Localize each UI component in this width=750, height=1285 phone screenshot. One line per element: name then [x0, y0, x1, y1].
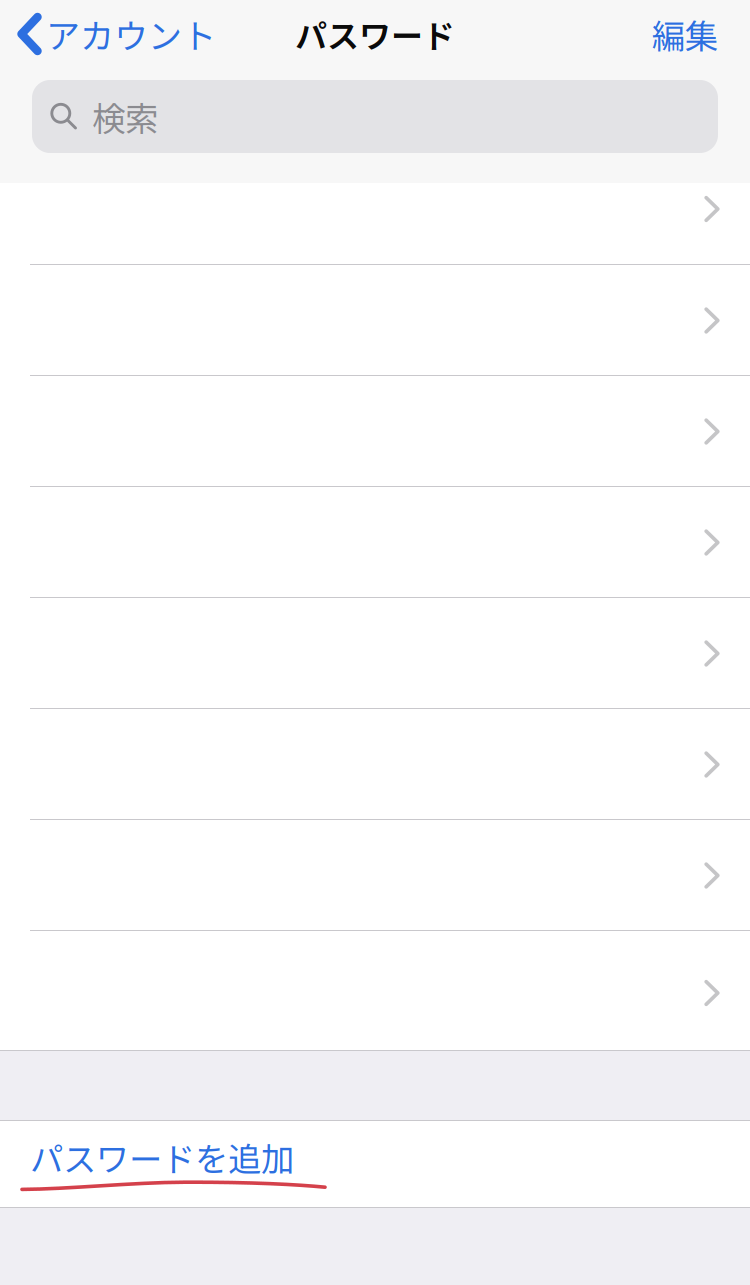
- button[interactable]: Saved password: [0, 376, 750, 487]
- button[interactable]: 編集: [620, 0, 750, 68]
- button[interactable]: Saved password: [0, 598, 750, 709]
- button[interactable]: Saved password: [0, 183, 750, 265]
- button[interactable]: パスワードを追加: [0, 1121, 750, 1207]
- staticText: 編集: [652, 10, 718, 58]
- staticText: 検索: [92, 92, 158, 141]
- staticText: パスワード: [295, 11, 455, 57]
- staticText: アカウント: [46, 9, 216, 59]
- staticText: パスワードを追加: [30, 1133, 294, 1181]
- button[interactable]: アカウント: [0, 0, 224, 68]
- button[interactable]: Saved password: [0, 820, 750, 931]
- button[interactable]: Saved password: [0, 487, 750, 598]
- button[interactable]: Saved password: [0, 265, 750, 376]
- button[interactable]: Saved password: [0, 709, 750, 820]
